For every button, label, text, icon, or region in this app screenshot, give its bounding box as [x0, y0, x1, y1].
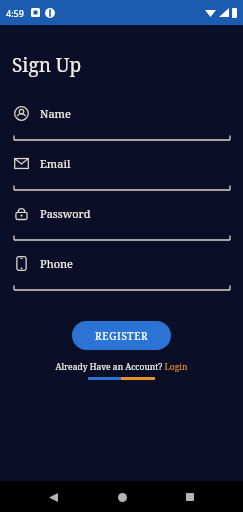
- button[interactable]: Email: [0, 151, 243, 201]
- staticText: Email: [40, 156, 71, 171]
- staticText: Name: [40, 106, 71, 121]
- button[interactable]: Back: [38, 482, 68, 512]
- button[interactable]: Name: [0, 101, 243, 151]
- button[interactable]: Password: [0, 201, 243, 251]
- button[interactable]: Home: [107, 482, 137, 512]
- staticText: 4:59: [6, 7, 24, 19]
- button[interactable]: REGISTER: [72, 321, 171, 350]
- staticText: Sign Up: [12, 52, 82, 78]
- button[interactable]: Already Have an Account? Login: [55, 361, 188, 373]
- button[interactable]: Phone: [0, 251, 243, 301]
- staticText: Phone: [40, 256, 73, 271]
- button[interactable]: Recent apps: [175, 482, 205, 512]
- staticText: Already Have an Account? Login: [55, 361, 188, 373]
- staticText: Password: [40, 206, 91, 221]
- staticText: REGISTER: [95, 329, 149, 343]
